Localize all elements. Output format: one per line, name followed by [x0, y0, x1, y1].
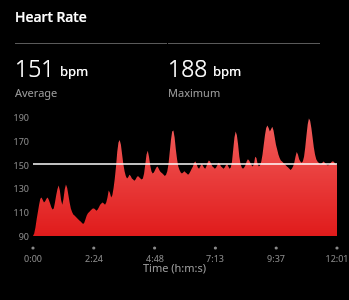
staticText: 188: [168, 52, 208, 83]
staticText: 7:13: [195, 252, 235, 264]
button[interactable]: 151: [15, 43, 167, 100]
staticText: 110: [3, 206, 29, 218]
staticText: 130: [3, 182, 29, 194]
staticText: 0:00: [13, 252, 53, 264]
staticText: 90: [3, 230, 29, 242]
button[interactable]: Heart rate chart: [0, 112, 349, 260]
staticText: 190: [3, 111, 29, 123]
staticText: bpm: [213, 62, 242, 80]
staticText: Time (h:m:s): [0, 260, 349, 275]
staticText: 150: [3, 159, 29, 171]
staticText: Maximum: [168, 85, 221, 100]
staticText: 4:48: [135, 252, 175, 264]
staticText: 9:37: [256, 252, 296, 264]
staticText: 151: [15, 52, 55, 83]
staticText: bpm: [60, 62, 89, 80]
staticText: Heart Rate: [15, 7, 87, 26]
staticText: 170: [3, 135, 29, 147]
button[interactable]: 188: [168, 43, 334, 100]
staticText: 12:01: [317, 252, 349, 264]
staticText: Average: [15, 85, 58, 100]
staticText: 2:24: [74, 252, 114, 264]
